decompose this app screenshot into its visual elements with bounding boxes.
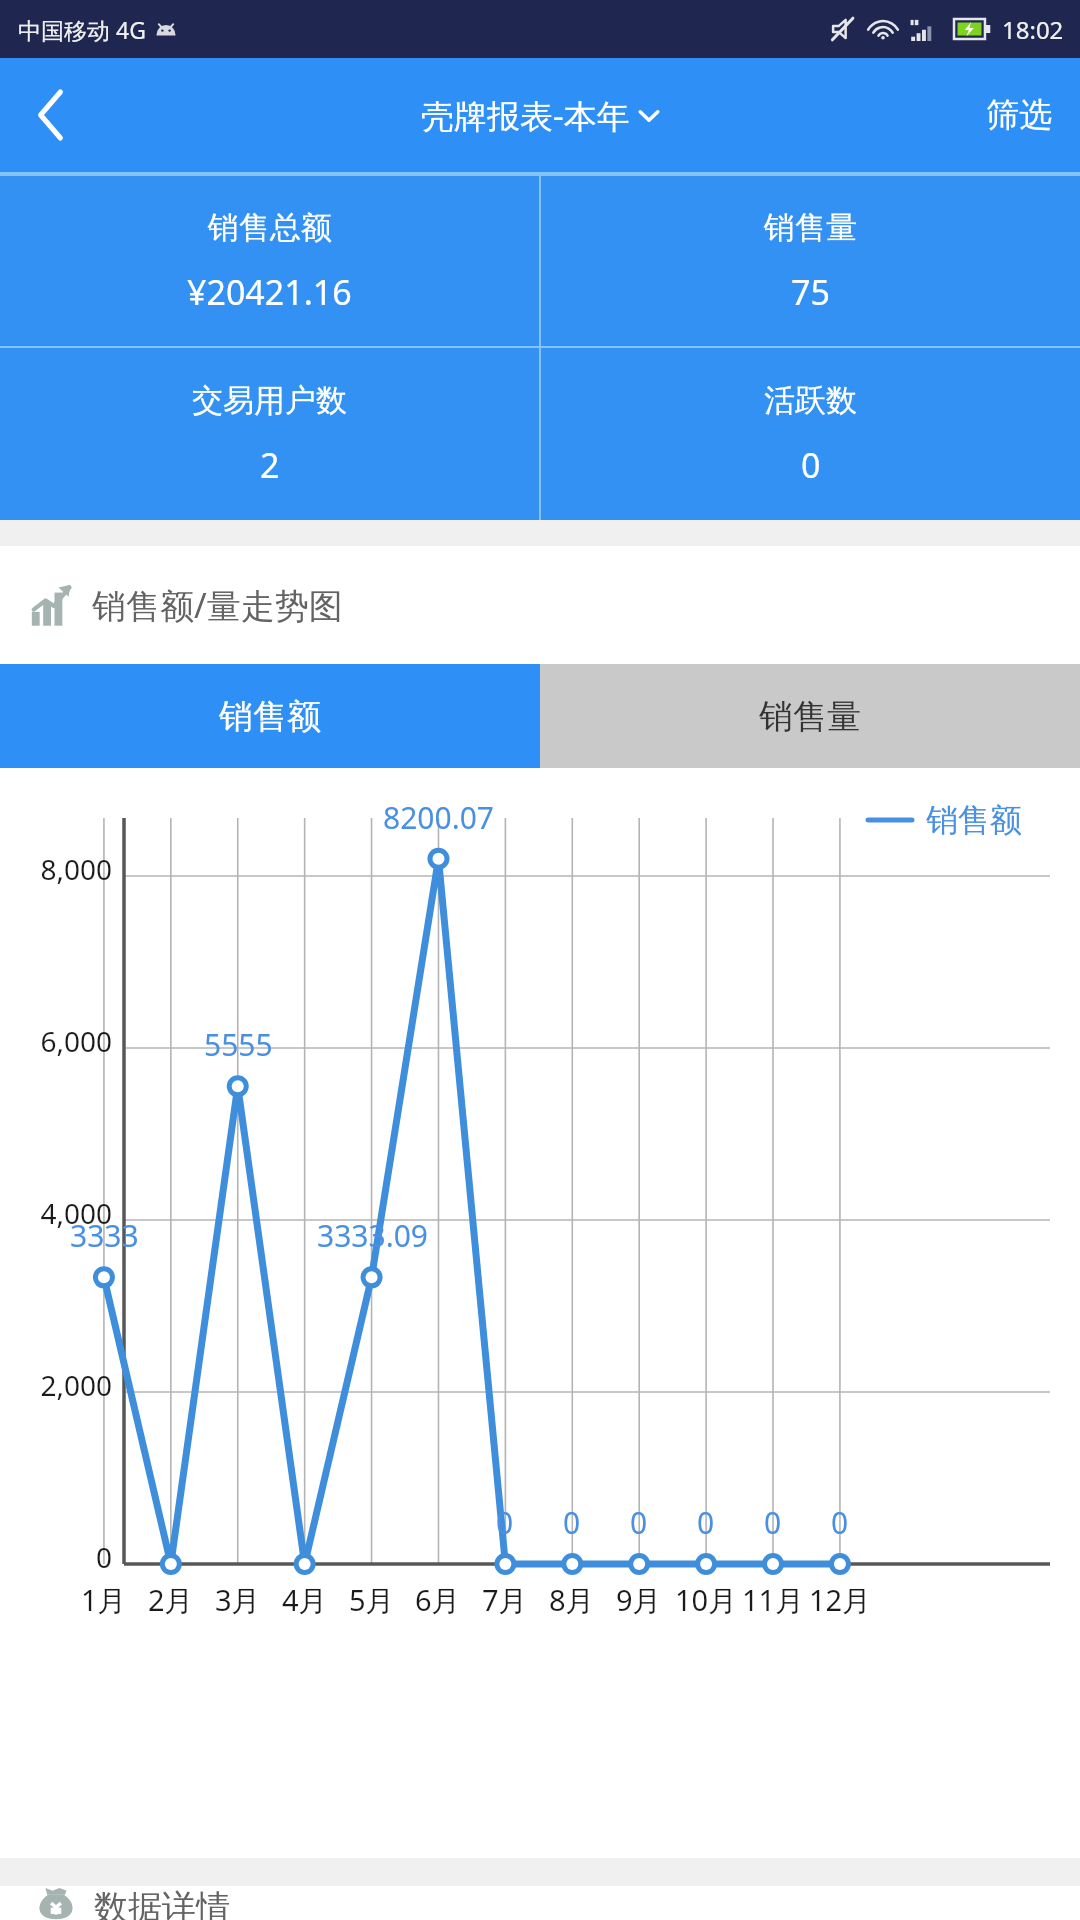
staticText: 销售额/量走势图 (92, 582, 343, 628)
staticText: 0 (95, 1538, 112, 1576)
staticText: 销售额 (219, 695, 321, 738)
staticText: 0 (831, 1502, 849, 1543)
staticText: 0 (630, 1502, 648, 1543)
staticText: 3333 (70, 1215, 139, 1256)
button[interactable]: 返回 (10, 73, 94, 157)
staticText: 销售总额 (208, 208, 332, 247)
staticText: 5555 (204, 1024, 273, 1065)
staticText: 3月 (215, 1580, 261, 1620)
staticText: 2,000 (40, 1366, 112, 1404)
staticText: 11月 (742, 1580, 805, 1620)
button[interactable]: 活跃数 (541, 348, 1080, 520)
staticText: 75 (791, 269, 830, 315)
staticText: 销售量 (764, 208, 857, 247)
staticText: 3333.09 (317, 1215, 428, 1256)
button[interactable]: 销售额 (0, 664, 540, 768)
staticText: 0 (496, 1502, 514, 1543)
staticText: 4月 (282, 1580, 328, 1620)
staticText: 8200.07 (383, 797, 494, 838)
staticText: 筛选 (986, 94, 1052, 136)
staticText: 壳牌报表-本年 (421, 93, 630, 138)
staticText: 活跃数 (764, 381, 857, 420)
staticText: 12月 (809, 1580, 872, 1620)
staticText: 7月 (482, 1580, 528, 1620)
staticText: 1月 (81, 1580, 127, 1620)
staticText: 2月 (148, 1580, 194, 1620)
staticText: 2 (260, 442, 280, 488)
button[interactable]: 壳牌报表-本年 (421, 93, 660, 138)
staticText: 6,000 (40, 1022, 112, 1060)
button[interactable]: 交易用户数 (0, 348, 539, 520)
staticText: 销售量 (759, 695, 861, 738)
staticText: 8,000 (40, 850, 112, 888)
staticText: 5月 (349, 1580, 395, 1620)
staticText: 4,000 (40, 1194, 112, 1232)
button[interactable]: 销售总额 (0, 176, 539, 346)
staticText: 销售额 (926, 800, 1022, 840)
staticText: 10月 (675, 1580, 738, 1620)
staticText: 中国移动 4G (18, 14, 146, 45)
staticText: 18:02 (1002, 13, 1064, 46)
staticText: 8月 (549, 1580, 595, 1620)
staticText: 0 (697, 1502, 715, 1543)
button[interactable]: 销售量 (540, 664, 1080, 768)
staticText: ¥20421.16 (187, 269, 352, 315)
button[interactable]: 筛选 (958, 58, 1080, 172)
staticText: 数据详情 (94, 1886, 230, 1920)
staticText: 9月 (616, 1580, 662, 1620)
staticText: 0 (764, 1502, 782, 1543)
staticText: 0 (801, 442, 821, 488)
button[interactable]: 销售量 (541, 176, 1080, 346)
staticText: 交易用户数 (192, 381, 347, 420)
staticText: 0 (563, 1502, 581, 1543)
staticText: 6月 (415, 1580, 461, 1620)
